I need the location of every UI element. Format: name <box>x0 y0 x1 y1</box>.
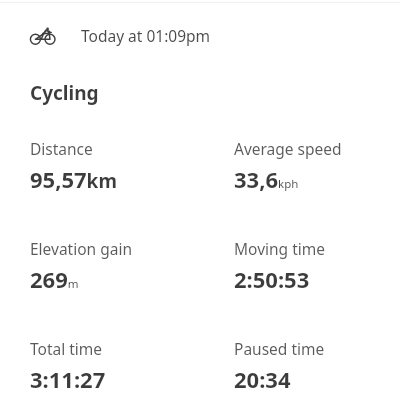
button[interactable]: Distance <box>30 138 234 194</box>
staticText: 3:11:27 <box>30 364 106 394</box>
button[interactable]: Total time <box>30 338 234 394</box>
staticText: Distance <box>30 138 93 159</box>
other: Cycling activity <box>30 27 56 45</box>
button[interactable]: Moving time <box>234 238 384 294</box>
staticText: 33,6kph <box>234 164 299 194</box>
staticText: Paused time <box>234 338 325 359</box>
staticText: Total time <box>30 338 103 359</box>
staticText: Today at 01:09pm <box>81 25 211 46</box>
staticText: 2:50:53 <box>234 264 310 294</box>
staticText: Moving time <box>234 238 325 259</box>
button[interactable]: Elevation gain <box>30 238 234 294</box>
staticText: 20:34 <box>234 364 291 394</box>
staticText: 269m <box>30 264 79 294</box>
button[interactable]: Cycling activity <box>0 25 400 46</box>
staticText: Cycling <box>30 80 99 106</box>
staticText: 95,57km <box>30 164 117 194</box>
button[interactable]: Paused time <box>234 338 384 394</box>
button[interactable]: Average speed <box>234 138 384 194</box>
staticText: Elevation gain <box>30 238 133 259</box>
staticText: Average speed <box>234 138 342 159</box>
